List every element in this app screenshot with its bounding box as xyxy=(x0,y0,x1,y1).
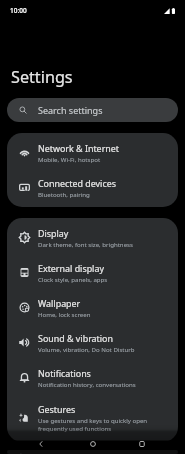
staticText: Clock style, panels, apps xyxy=(38,275,108,283)
staticText: Settings xyxy=(11,66,73,88)
button[interactable]: Sound & vibration xyxy=(7,325,178,360)
button[interactable]: Notifications xyxy=(7,360,178,395)
staticText: Home, lock screen xyxy=(38,310,91,318)
staticText: Sound & vibration xyxy=(38,332,113,344)
button[interactable]: Home xyxy=(73,433,113,454)
button[interactable]: Display xyxy=(7,220,178,255)
staticText: Display xyxy=(38,227,69,239)
staticText: Use gestures and keys to quickly open xyxy=(38,416,148,424)
staticText: External display xyxy=(38,262,104,274)
staticText: Notifications xyxy=(38,367,91,379)
staticText: frequently used functions xyxy=(38,424,112,432)
staticText: Wallpaper xyxy=(38,297,81,309)
button[interactable]: Recent apps xyxy=(122,433,162,454)
staticText: Mobile, Wi-Fi, hotspot xyxy=(38,155,101,163)
staticText: Volume, vibration, Do Not Disturb xyxy=(38,345,135,353)
button[interactable]: Connected devices xyxy=(7,170,178,205)
staticText: Search settings xyxy=(38,104,103,116)
staticText: Bluetooth, pairing xyxy=(38,190,90,198)
staticText: Network & Internet xyxy=(38,142,120,154)
button[interactable]: Search settings xyxy=(7,98,178,122)
staticText: 10:00 xyxy=(10,6,27,15)
button[interactable]: Network & Internet xyxy=(7,135,178,170)
button[interactable]: Back xyxy=(21,433,61,454)
staticText: Connected devices xyxy=(38,177,116,189)
button[interactable]: Wallpaper xyxy=(7,290,178,325)
button[interactable]: External display xyxy=(7,255,178,290)
staticText: Gestures xyxy=(38,403,76,415)
staticText: Notification history, conversations xyxy=(38,380,136,388)
button[interactable]: Gestures xyxy=(7,395,178,440)
staticText: Dark theme, font size, brightness xyxy=(38,240,133,248)
